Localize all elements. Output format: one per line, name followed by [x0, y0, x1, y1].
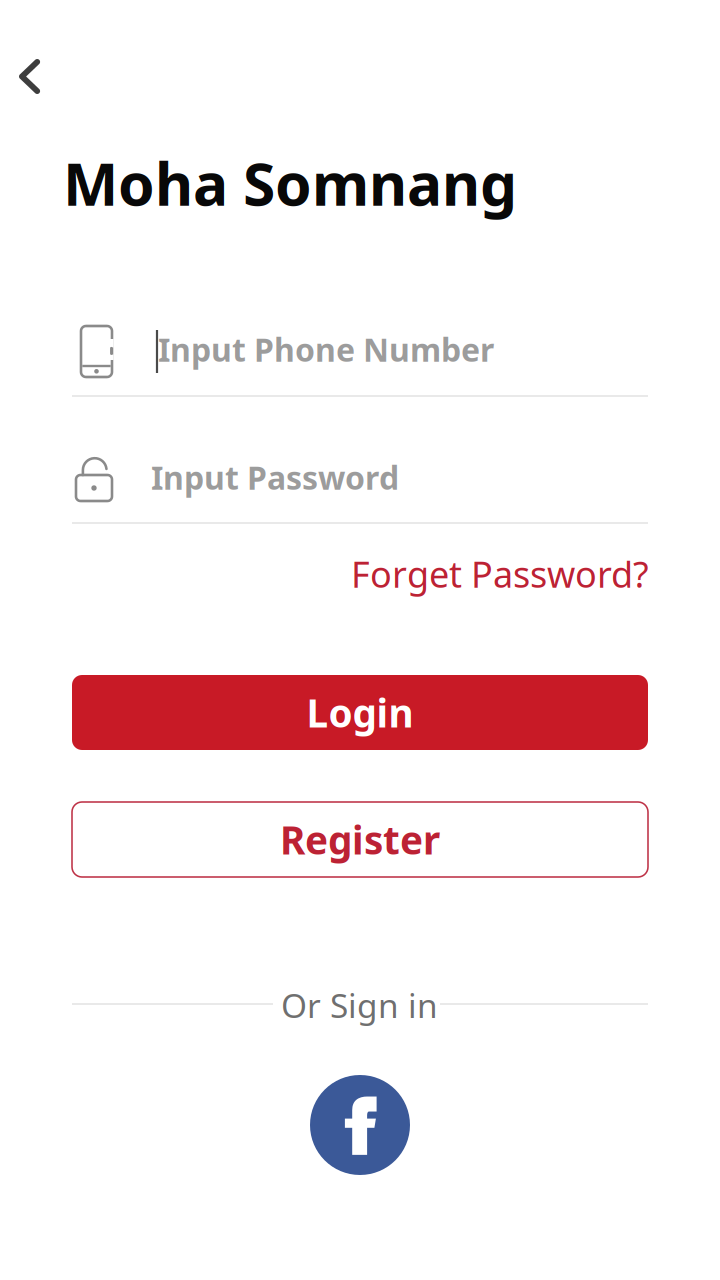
button[interactable]: Sign in with Facebook	[310, 1075, 410, 1175]
button[interactable]: Input Password	[72, 440, 648, 530]
staticText: Login	[306, 687, 413, 738]
staticText: Register	[280, 814, 440, 865]
button[interactable]: Back	[0, 34, 78, 114]
button[interactable]: Login	[72, 675, 648, 750]
button[interactable]: Input Phone Number	[72, 310, 648, 400]
button[interactable]: Forget Password?	[345, 542, 655, 606]
staticText: Forget Password?	[351, 550, 649, 598]
staticText: Or Sign in	[281, 983, 438, 1027]
button[interactable]: Register	[72, 802, 648, 877]
staticText: Input Phone Number	[158, 328, 494, 370]
staticText: Input Password	[151, 456, 399, 498]
staticText: Moha Somnang	[63, 144, 517, 222]
